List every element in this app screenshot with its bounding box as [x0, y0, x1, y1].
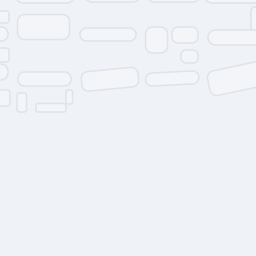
button[interactable]: Pill control [80, 28, 136, 41]
button[interactable]: Badge [181, 50, 198, 63]
button[interactable]: Tilted card [81, 69, 138, 89]
button[interactable]: Square tile [145, 27, 167, 53]
button[interactable]: Wide pill [208, 30, 256, 45]
button[interactable]: Row pill [18, 72, 71, 86]
button[interactable]: Tilted banner [208, 65, 256, 90]
button[interactable]: Primary card [17, 14, 69, 39]
button[interactable]: Tilted pill [145, 72, 199, 85]
button[interactable]: Small tile [172, 27, 198, 43]
